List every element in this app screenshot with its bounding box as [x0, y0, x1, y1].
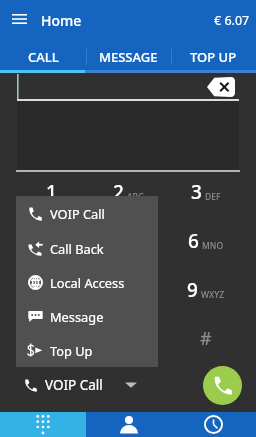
button[interactable]: #	[167, 314, 244, 363]
button[interactable]: Dialpad	[0, 412, 86, 437]
staticText: Local Access	[50, 274, 125, 291]
button[interactable]: 4	[12, 216, 90, 265]
button[interactable]: 0	[90, 314, 167, 363]
staticText: MNO	[202, 240, 224, 252]
button[interactable]: Local Access	[16, 265, 158, 299]
staticText: 2	[113, 179, 124, 205]
staticText: Home	[41, 11, 82, 30]
button[interactable]: 8	[90, 265, 167, 314]
staticText: DEF	[205, 191, 221, 203]
button[interactable]: MESSAGE	[86, 44, 171, 73]
staticText: 1	[46, 179, 57, 205]
staticText: 8	[113, 277, 124, 303]
staticText: Message	[50, 308, 104, 325]
staticText: 7	[33, 277, 44, 303]
button[interactable]: Open navigation drawer	[0, 0, 38, 38]
button[interactable]: 2	[90, 168, 167, 216]
staticText: Top Up	[50, 342, 93, 359]
staticText: 3	[191, 179, 202, 205]
staticText: MESSAGE	[99, 48, 158, 66]
staticText: ABC	[127, 191, 144, 203]
staticText: 4	[36, 228, 47, 254]
staticText: VOIP Call	[50, 205, 105, 222]
button[interactable]: VOIP Call	[19, 369, 142, 401]
button[interactable]: Call history	[171, 412, 256, 437]
staticText: € 6.07	[214, 12, 250, 29]
staticText: 6	[188, 228, 199, 254]
button[interactable]: TOP UP	[171, 44, 256, 73]
button[interactable]: 9	[167, 265, 244, 314]
staticText: GHI	[50, 240, 66, 252]
staticText: Call Back	[50, 240, 104, 257]
button[interactable]: Message	[16, 299, 158, 333]
button[interactable]: Contacts	[86, 412, 171, 437]
staticText: #	[200, 326, 212, 351]
staticText: WXYZ	[201, 289, 225, 301]
button[interactable]: 5	[90, 216, 167, 265]
button[interactable]: *	[12, 314, 90, 363]
button[interactable]: Top Up	[16, 333, 158, 367]
button[interactable]: CALL	[0, 44, 86, 73]
button[interactable]: Call Back	[16, 231, 158, 265]
staticText: CALL	[28, 48, 59, 66]
button[interactable]: 6	[167, 216, 244, 265]
button[interactable]: VOIP Call	[16, 196, 158, 231]
button[interactable]: 3	[167, 168, 244, 216]
staticText: VOIP Call	[45, 376, 103, 394]
staticText: 9	[187, 277, 198, 303]
button[interactable]: 1	[12, 168, 90, 216]
staticText: TOP UP	[190, 48, 237, 66]
staticText: *	[46, 326, 56, 351]
button[interactable]: Call	[203, 366, 242, 405]
button[interactable]: Backspace	[207, 77, 235, 97]
button[interactable]: 7	[12, 265, 90, 314]
